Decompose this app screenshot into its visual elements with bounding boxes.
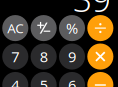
button[interactable]: Divide	[87, 15, 113, 41]
staticText: 39	[73, 0, 111, 21]
button[interactable]: 4	[2, 72, 28, 87]
button[interactable]: %	[59, 15, 85, 41]
staticText: 5	[40, 75, 48, 87]
button[interactable]: 9	[59, 43, 85, 70]
staticText: 8	[40, 47, 48, 66]
button[interactable]: 8	[31, 43, 57, 70]
staticText: 7	[11, 47, 19, 66]
staticText: %	[66, 18, 78, 38]
staticText: 9	[68, 47, 76, 66]
button[interactable]: Multiply	[87, 43, 113, 70]
button[interactable]: 6	[59, 72, 85, 87]
staticText: 6	[68, 75, 76, 87]
staticText: AC	[7, 19, 23, 37]
button[interactable]: Minus	[87, 72, 113, 87]
button[interactable]: 7	[2, 43, 28, 70]
staticText: 4	[11, 75, 19, 87]
button[interactable]: Plus minus	[31, 15, 57, 41]
button[interactable]: AC	[2, 15, 28, 41]
button[interactable]: 5	[31, 72, 57, 87]
